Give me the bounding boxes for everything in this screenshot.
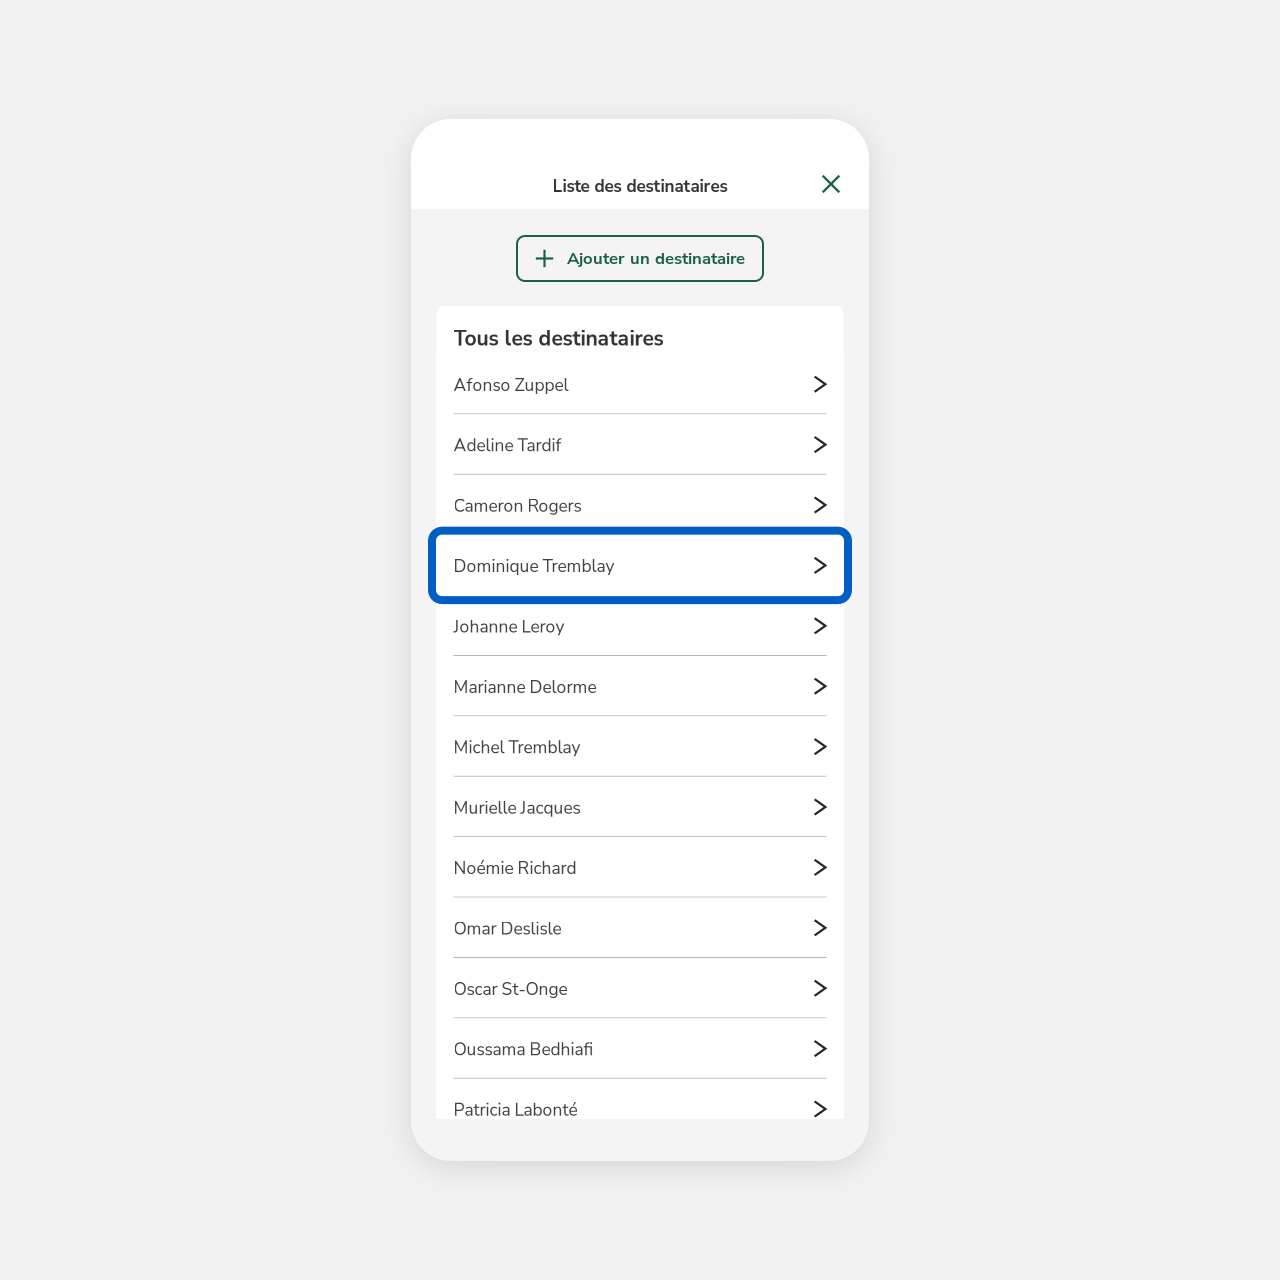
button[interactable]: Fermer [811, 164, 851, 204]
staticText: Omar Deslisle [453, 917, 561, 941]
staticText: Murielle Jacques [453, 796, 580, 820]
button[interactable]: Michel Tremblay [436, 716, 843, 777]
button[interactable]: Marianne Delorme [436, 656, 843, 716]
staticText: Liste des destinataires [552, 175, 727, 198]
staticText: Noémie Richard [453, 857, 576, 880]
staticText: Oussama Bedhiafi [453, 1038, 593, 1061]
staticText: Cameron Rogers [453, 494, 581, 518]
button[interactable]: Afonso Zuppel [436, 354, 843, 414]
staticText: Afonso Zuppel [453, 373, 568, 397]
staticText: Michel Tremblay [453, 736, 580, 759]
button[interactable]: Oscar St-Onge [436, 958, 843, 1018]
button[interactable]: Cameron Rogers [436, 475, 843, 535]
staticText: Oscar St-Onge [453, 977, 567, 1001]
button[interactable]: Murielle Jacques [436, 777, 843, 837]
button[interactable]: Adeline Tardif [436, 414, 843, 475]
button[interactable]: Dominique Tremblay [436, 535, 843, 596]
button[interactable]: Noémie Richard [436, 837, 843, 898]
staticText: Marianne Delorme [453, 675, 596, 699]
staticText: Adeline Tardif [453, 434, 561, 457]
button[interactable]: Johanne Leroy [436, 596, 843, 656]
button[interactable]: Oussama Bedhiafi [436, 1018, 843, 1079]
staticText: Patricia Labonté [453, 1098, 577, 1122]
staticText: Dominique Tremblay [453, 555, 614, 578]
button[interactable]: Patricia Labonté [436, 1079, 843, 1139]
staticText: Johanne Leroy [453, 615, 564, 639]
staticText: Ajouter un destinataire [567, 247, 745, 270]
button[interactable]: Ajouter un destinataire [517, 236, 763, 281]
button[interactable]: Omar Deslisle [436, 898, 843, 958]
staticText: Tous les destinataires [453, 324, 663, 353]
